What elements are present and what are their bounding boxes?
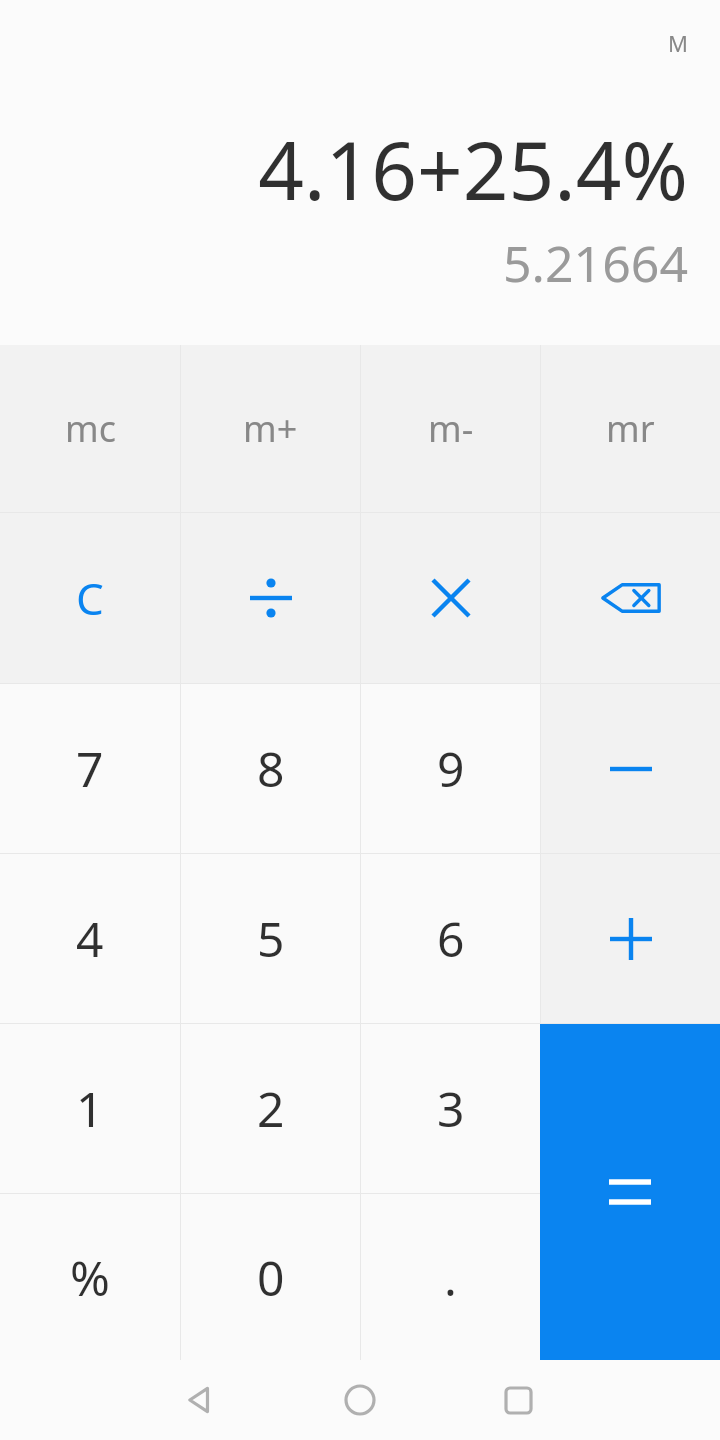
button[interactable]: m+ bbox=[181, 345, 360, 512]
staticText: 5 bbox=[257, 906, 285, 971]
staticText: C bbox=[76, 568, 104, 628]
staticText: 6 bbox=[437, 906, 465, 971]
staticText: 5.21664 bbox=[503, 229, 688, 297]
button[interactable]: Back bbox=[160, 1360, 240, 1440]
staticText: 3 bbox=[437, 1076, 465, 1141]
button[interactable]: 6 bbox=[361, 854, 540, 1023]
button[interactable]: 0 bbox=[181, 1194, 360, 1360]
staticText: 9 bbox=[437, 736, 465, 801]
staticText: 2 bbox=[257, 1076, 285, 1141]
staticText: m+ bbox=[243, 404, 298, 453]
staticText: m- bbox=[428, 404, 474, 453]
button[interactable]: Clear bbox=[0, 513, 180, 683]
button[interactable]: Home bbox=[320, 1360, 400, 1440]
button[interactable]: m- bbox=[361, 345, 540, 512]
button[interactable]: 3 bbox=[361, 1024, 540, 1193]
staticText: % bbox=[70, 1245, 110, 1310]
button[interactable]: Backspace bbox=[541, 513, 720, 683]
button[interactable]: 8 bbox=[181, 684, 360, 853]
staticText: 8 bbox=[257, 736, 285, 801]
staticText: 7 bbox=[76, 736, 104, 801]
button[interactable]: 1 bbox=[0, 1024, 180, 1193]
button[interactable]: 4 bbox=[0, 854, 180, 1023]
button[interactable]: mc bbox=[0, 345, 180, 512]
staticText: mc bbox=[65, 404, 116, 453]
button[interactable]: 9 bbox=[361, 684, 540, 853]
staticText: M bbox=[668, 28, 688, 58]
button[interactable]: 2 bbox=[181, 1024, 360, 1193]
button[interactable]: 7 bbox=[0, 684, 180, 853]
button[interactable]: Multiply bbox=[361, 513, 540, 683]
staticText: 0 bbox=[257, 1245, 285, 1310]
button[interactable]: Minus bbox=[541, 684, 720, 853]
button[interactable]: Equals bbox=[540, 1024, 720, 1360]
button[interactable]: . bbox=[361, 1194, 540, 1360]
button[interactable]: Divide bbox=[181, 513, 360, 683]
button[interactable]: Plus bbox=[541, 854, 720, 1023]
staticText: mr bbox=[606, 404, 655, 453]
staticText: . bbox=[444, 1245, 457, 1310]
staticText: 4 bbox=[76, 906, 104, 971]
staticText: 4.16+25.4% bbox=[258, 114, 688, 223]
button[interactable]: 5 bbox=[181, 854, 360, 1023]
button[interactable]: Recents bbox=[478, 1360, 558, 1440]
button[interactable]: mr bbox=[541, 345, 720, 512]
button[interactable]: % bbox=[0, 1194, 180, 1360]
staticText: 1 bbox=[76, 1076, 104, 1141]
